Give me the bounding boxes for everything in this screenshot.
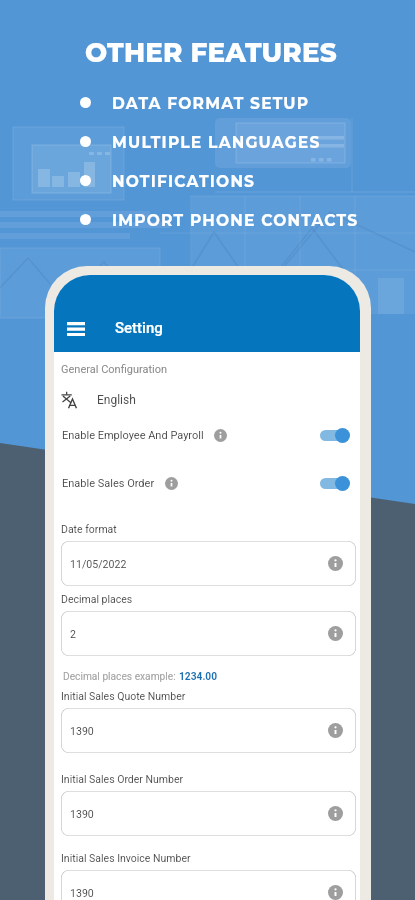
staticText: OTHER FEATURES — [85, 37, 337, 69]
button[interactable]: Enable Sales Order — [54, 472, 360, 494]
staticText: Enable Employee And Payroll — [62, 429, 204, 442]
staticText: Initial Sales Order Number — [61, 773, 184, 785]
button[interactable]: 1390 — [61, 708, 356, 753]
staticText: DATA FORMAT SETUP — [112, 94, 310, 110]
staticText: Setting — [115, 319, 163, 337]
staticText: IMPORT PHONE CONTACTS — [112, 211, 359, 227]
staticText: Date format — [61, 523, 117, 535]
button[interactable]: Open navigation menu — [63, 316, 89, 342]
button[interactable]: English — [54, 387, 360, 413]
staticText: 1390 — [70, 887, 94, 899]
button[interactable]: 1390 — [61, 791, 356, 836]
button[interactable]: Enable Employee And Payroll — [54, 424, 360, 446]
staticText: Decimal places — [61, 593, 133, 605]
button[interactable]: 11/05/2022 — [61, 541, 356, 586]
staticText: Enable Sales Order — [62, 477, 155, 490]
staticText: MULTIPLE LANGUAGES — [112, 133, 321, 149]
button[interactable]: NOTIFICATIONS — [80, 172, 256, 188]
staticText: Decimal places example: — [63, 671, 179, 683]
button[interactable]: 2 — [61, 611, 356, 656]
staticText: 1390 — [70, 725, 94, 737]
staticText: Initial Sales Invoice Number — [61, 852, 191, 864]
button[interactable]: Open navigation menu — [54, 275, 360, 352]
button[interactable]: 1390 — [61, 870, 356, 900]
staticText: 11/05/2022 — [70, 558, 127, 570]
staticText: English — [97, 393, 136, 407]
staticText: NOTIFICATIONS — [112, 172, 256, 188]
staticText: Initial Sales Quote Number — [61, 690, 186, 702]
staticText: General Configuration — [61, 363, 168, 376]
staticText: 1234.00 — [179, 671, 218, 683]
staticText: 2 — [70, 628, 76, 640]
staticText: 1390 — [70, 808, 94, 820]
button[interactable]: DATA FORMAT SETUP — [80, 94, 310, 110]
button[interactable]: IMPORT PHONE CONTACTS — [80, 211, 359, 227]
button[interactable]: MULTIPLE LANGUAGES — [80, 133, 321, 149]
